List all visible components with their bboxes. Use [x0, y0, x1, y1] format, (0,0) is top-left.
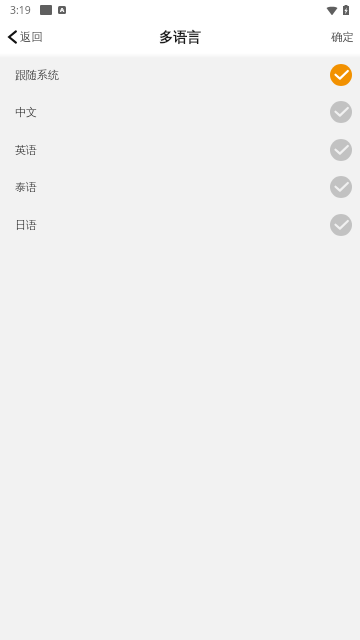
button[interactable]: 中文 — [0, 93, 360, 131]
staticText: 日语 — [15, 218, 37, 232]
staticText: 跟随系统 — [15, 68, 59, 82]
staticText: 多语言 — [159, 29, 201, 47]
staticText: 3:19 — [10, 3, 31, 17]
staticText: 英语 — [15, 143, 37, 157]
button[interactable]: 泰语 — [0, 168, 360, 206]
button[interactable]: 英语 — [0, 131, 360, 169]
button[interactable]: 返回 — [0, 20, 53, 53]
staticText: 确定 — [331, 30, 354, 44]
staticText: 中文 — [15, 105, 37, 119]
button[interactable]: 跟随系统 — [0, 56, 360, 94]
staticText: A — [60, 6, 65, 14]
button[interactable]: 日语 — [0, 206, 360, 244]
button[interactable]: 确定 — [324, 20, 360, 53]
staticText: 泰语 — [15, 180, 37, 194]
staticText: 返回 — [20, 30, 43, 44]
